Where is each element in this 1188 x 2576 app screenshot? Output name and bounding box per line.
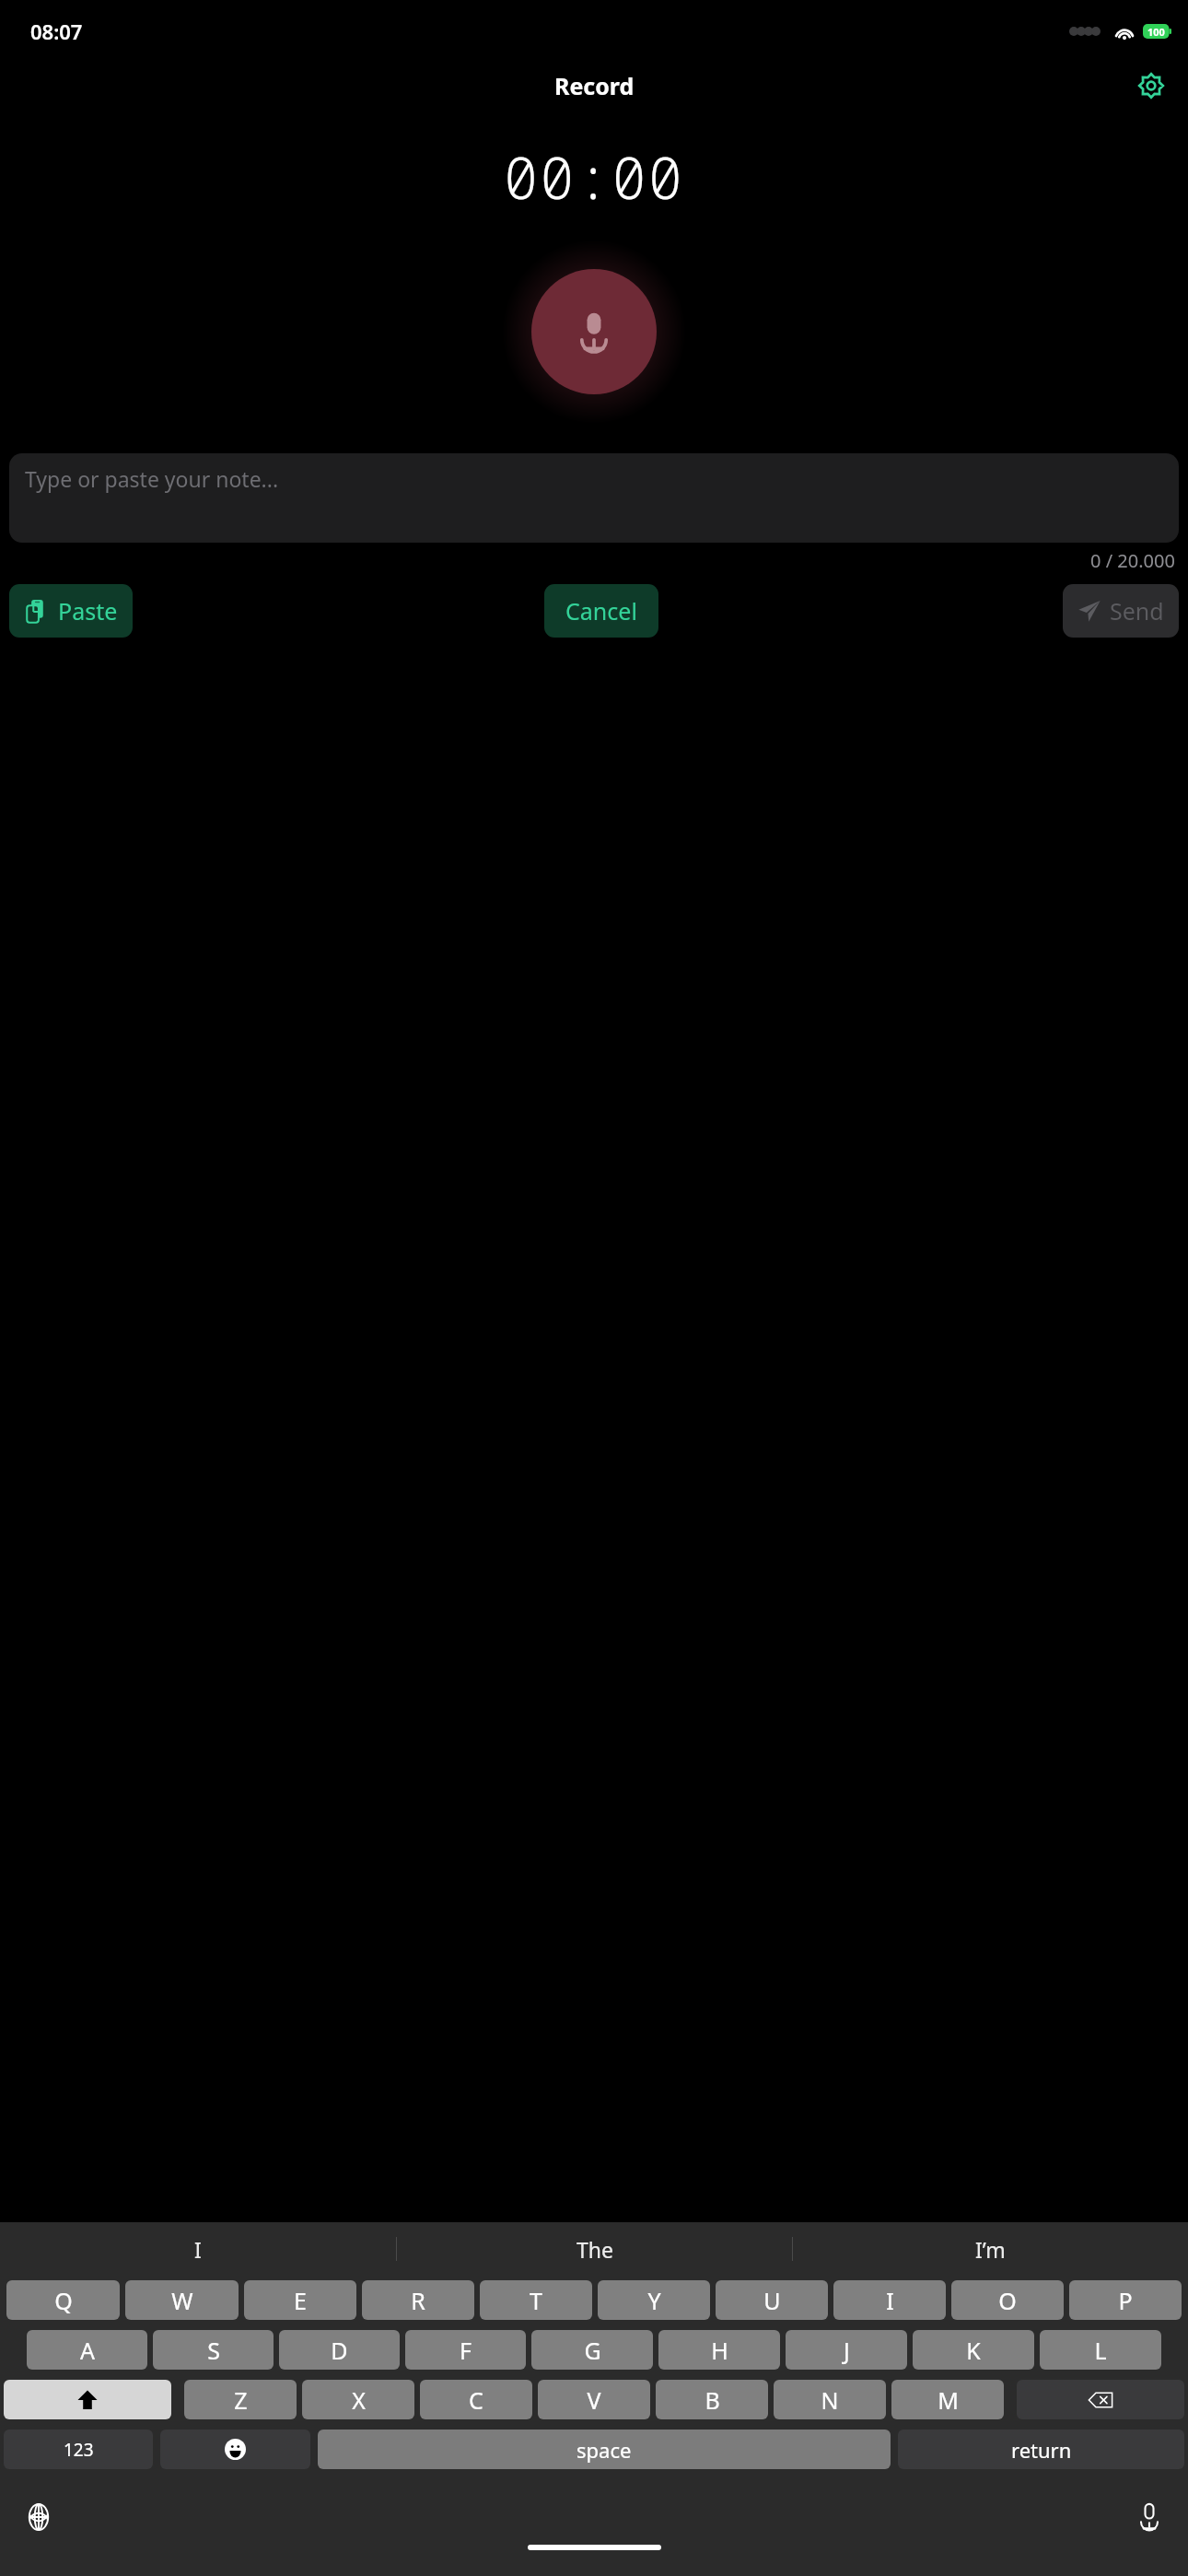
staticText: E xyxy=(294,2285,307,2316)
button[interactable]: Record xyxy=(531,269,657,394)
staticText: Send xyxy=(1110,595,1164,626)
button[interactable]: X xyxy=(302,2380,414,2419)
staticText: M xyxy=(938,2384,959,2416)
button[interactable]: The xyxy=(397,2222,792,2276)
button[interactable]: A xyxy=(27,2330,147,2370)
staticText: space xyxy=(577,2436,632,2464)
button[interactable]: I xyxy=(0,2222,396,2276)
staticText: V xyxy=(587,2384,601,2416)
staticText: J xyxy=(844,2335,850,2366)
button[interactable]: R xyxy=(362,2280,474,2320)
button[interactable]: Send xyxy=(1063,584,1179,638)
staticText: K xyxy=(966,2335,981,2366)
button[interactable]: Backspace xyxy=(1017,2380,1184,2419)
staticText: D xyxy=(331,2335,348,2366)
button[interactable]: return xyxy=(898,2430,1184,2469)
button[interactable]: G xyxy=(531,2330,653,2370)
staticText: I’m xyxy=(975,2235,1006,2264)
staticText: 100 xyxy=(1147,25,1165,39)
button[interactable]: space xyxy=(318,2430,891,2469)
staticText: X xyxy=(352,2384,366,2416)
staticText: W xyxy=(171,2285,193,2316)
button[interactable]: E xyxy=(244,2280,356,2320)
button[interactable]: Dictation xyxy=(1124,2491,1175,2543)
button[interactable]: J xyxy=(786,2330,907,2370)
staticText: Y xyxy=(647,2285,661,2316)
button[interactable]: C xyxy=(420,2380,532,2419)
staticText: 00:00 xyxy=(504,138,685,216)
button[interactable]: U xyxy=(716,2280,828,2320)
button[interactable]: Cancel xyxy=(544,584,658,638)
button[interactable]: T xyxy=(480,2280,592,2320)
button[interactable]: V xyxy=(538,2380,650,2419)
button[interactable]: Shift xyxy=(4,2380,171,2419)
staticText: 0 / 20.000 xyxy=(1090,548,1175,573)
button[interactable]: H xyxy=(658,2330,780,2370)
button[interactable]: Settings xyxy=(1127,62,1175,110)
staticText: 08:07 xyxy=(30,18,83,45)
button[interactable]: Z xyxy=(184,2380,297,2419)
button[interactable]: N xyxy=(774,2380,886,2419)
button[interactable]: I xyxy=(833,2280,946,2320)
staticText: T xyxy=(530,2285,542,2316)
staticText: Paste xyxy=(58,595,118,626)
staticText: Q xyxy=(54,2285,73,2316)
staticText: F xyxy=(460,2335,472,2366)
button[interactable]: S xyxy=(153,2330,274,2370)
button[interactable]: F xyxy=(405,2330,526,2370)
staticText: P xyxy=(1118,2285,1133,2316)
staticText: Type or paste your note... xyxy=(25,464,279,493)
staticText: U xyxy=(763,2285,781,2316)
button[interactable]: O xyxy=(951,2280,1064,2320)
staticText: Z xyxy=(234,2384,248,2416)
button[interactable]: P xyxy=(1069,2280,1182,2320)
button[interactable]: Y xyxy=(598,2280,710,2320)
staticText: B xyxy=(705,2384,720,2416)
button[interactable]: Change keyboard language xyxy=(13,2491,64,2543)
staticText: 123 xyxy=(64,2438,94,2462)
staticText: G xyxy=(584,2335,601,2366)
staticText: H xyxy=(711,2335,728,2366)
staticText: R xyxy=(411,2285,425,2316)
staticText: A xyxy=(80,2335,95,2366)
button[interactable]: W xyxy=(125,2280,239,2320)
staticText: C xyxy=(469,2384,483,2416)
staticText: Cancel xyxy=(565,595,637,626)
button[interactable]: L xyxy=(1040,2330,1161,2370)
button[interactable]: K xyxy=(913,2330,1034,2370)
staticText: The xyxy=(577,2235,613,2264)
button[interactable]: Type or paste your note... xyxy=(9,453,1179,543)
staticText: Record xyxy=(554,70,635,101)
staticText: N xyxy=(821,2384,839,2416)
button[interactable]: Paste xyxy=(9,584,133,638)
staticText: S xyxy=(207,2335,220,2366)
staticText: O xyxy=(998,2285,1017,2316)
button[interactable]: Q xyxy=(6,2280,120,2320)
staticText: I xyxy=(194,2235,202,2264)
staticText: return xyxy=(1011,2436,1072,2464)
button[interactable]: 123 xyxy=(4,2430,153,2469)
staticText: I xyxy=(886,2285,894,2316)
button[interactable]: B xyxy=(656,2380,768,2419)
button[interactable]: Emoji xyxy=(160,2430,310,2469)
button[interactable]: M xyxy=(891,2380,1004,2419)
staticText: L xyxy=(1094,2335,1107,2366)
button[interactable]: I’m xyxy=(793,2222,1188,2276)
button[interactable]: D xyxy=(279,2330,400,2370)
